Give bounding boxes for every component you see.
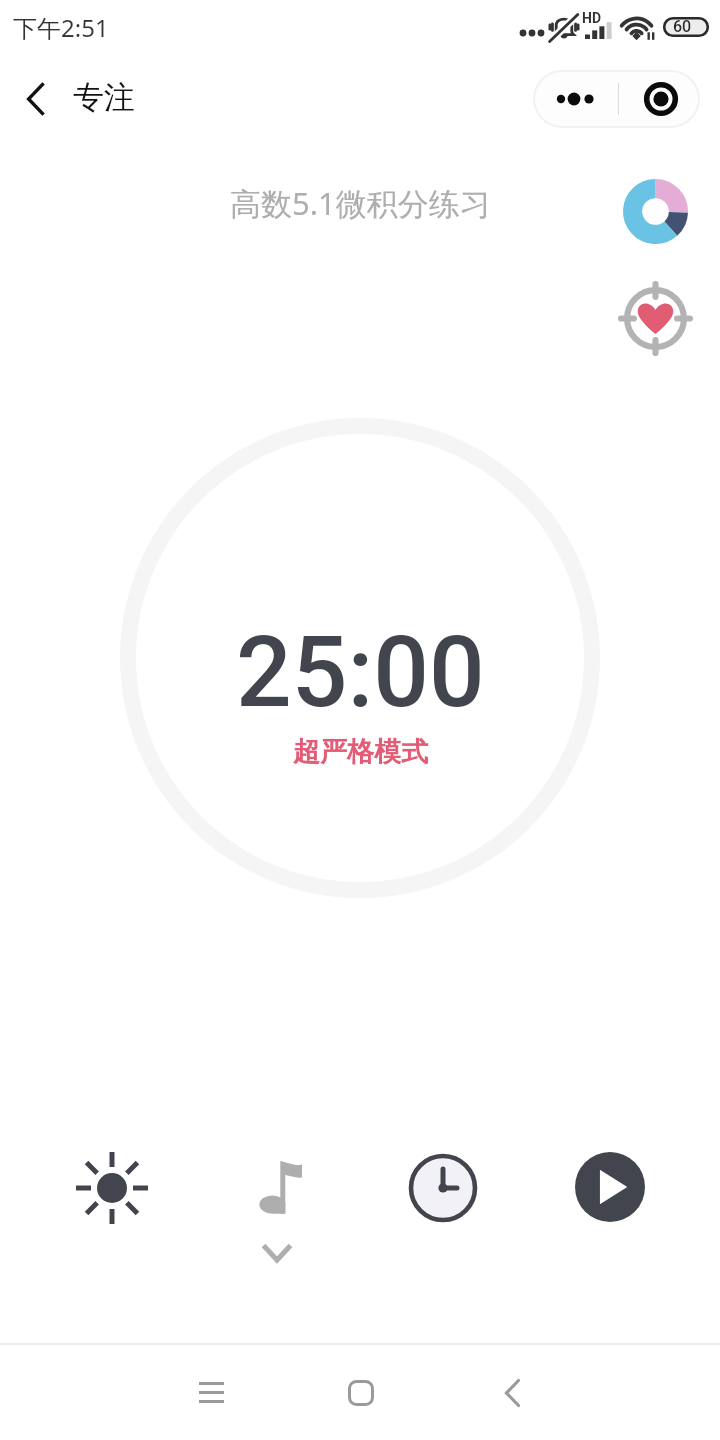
staticText: 高数5.1微积分练习 (230, 182, 491, 224)
staticText: 25:00 (236, 615, 485, 730)
button[interactable]: Statistics (610, 167, 698, 255)
button[interactable]: Home (286, 1345, 435, 1440)
button[interactable]: Focus goal (610, 271, 698, 359)
staticText: 60 (673, 17, 692, 36)
staticText: HD (582, 10, 601, 26)
staticText: 专注 (73, 78, 135, 117)
button[interactable]: Close mini program (619, 70, 699, 128)
button[interactable]: Recent apps (136, 1345, 286, 1440)
button[interactable]: Back (0, 70, 68, 128)
button[interactable]: White noise (218, 1118, 338, 1278)
button[interactable]: Timer duration (383, 1118, 503, 1258)
staticText: 下午2:51 (13, 11, 109, 44)
button[interactable]: Start focus (550, 1118, 670, 1258)
button[interactable]: Brightness (52, 1118, 172, 1258)
button[interactable]: Back (435, 1345, 584, 1440)
button[interactable]: More options (533, 70, 618, 128)
staticText: 超严格模式 (293, 735, 428, 769)
button[interactable]: 高数5.1微积分练习 (216, 178, 505, 228)
